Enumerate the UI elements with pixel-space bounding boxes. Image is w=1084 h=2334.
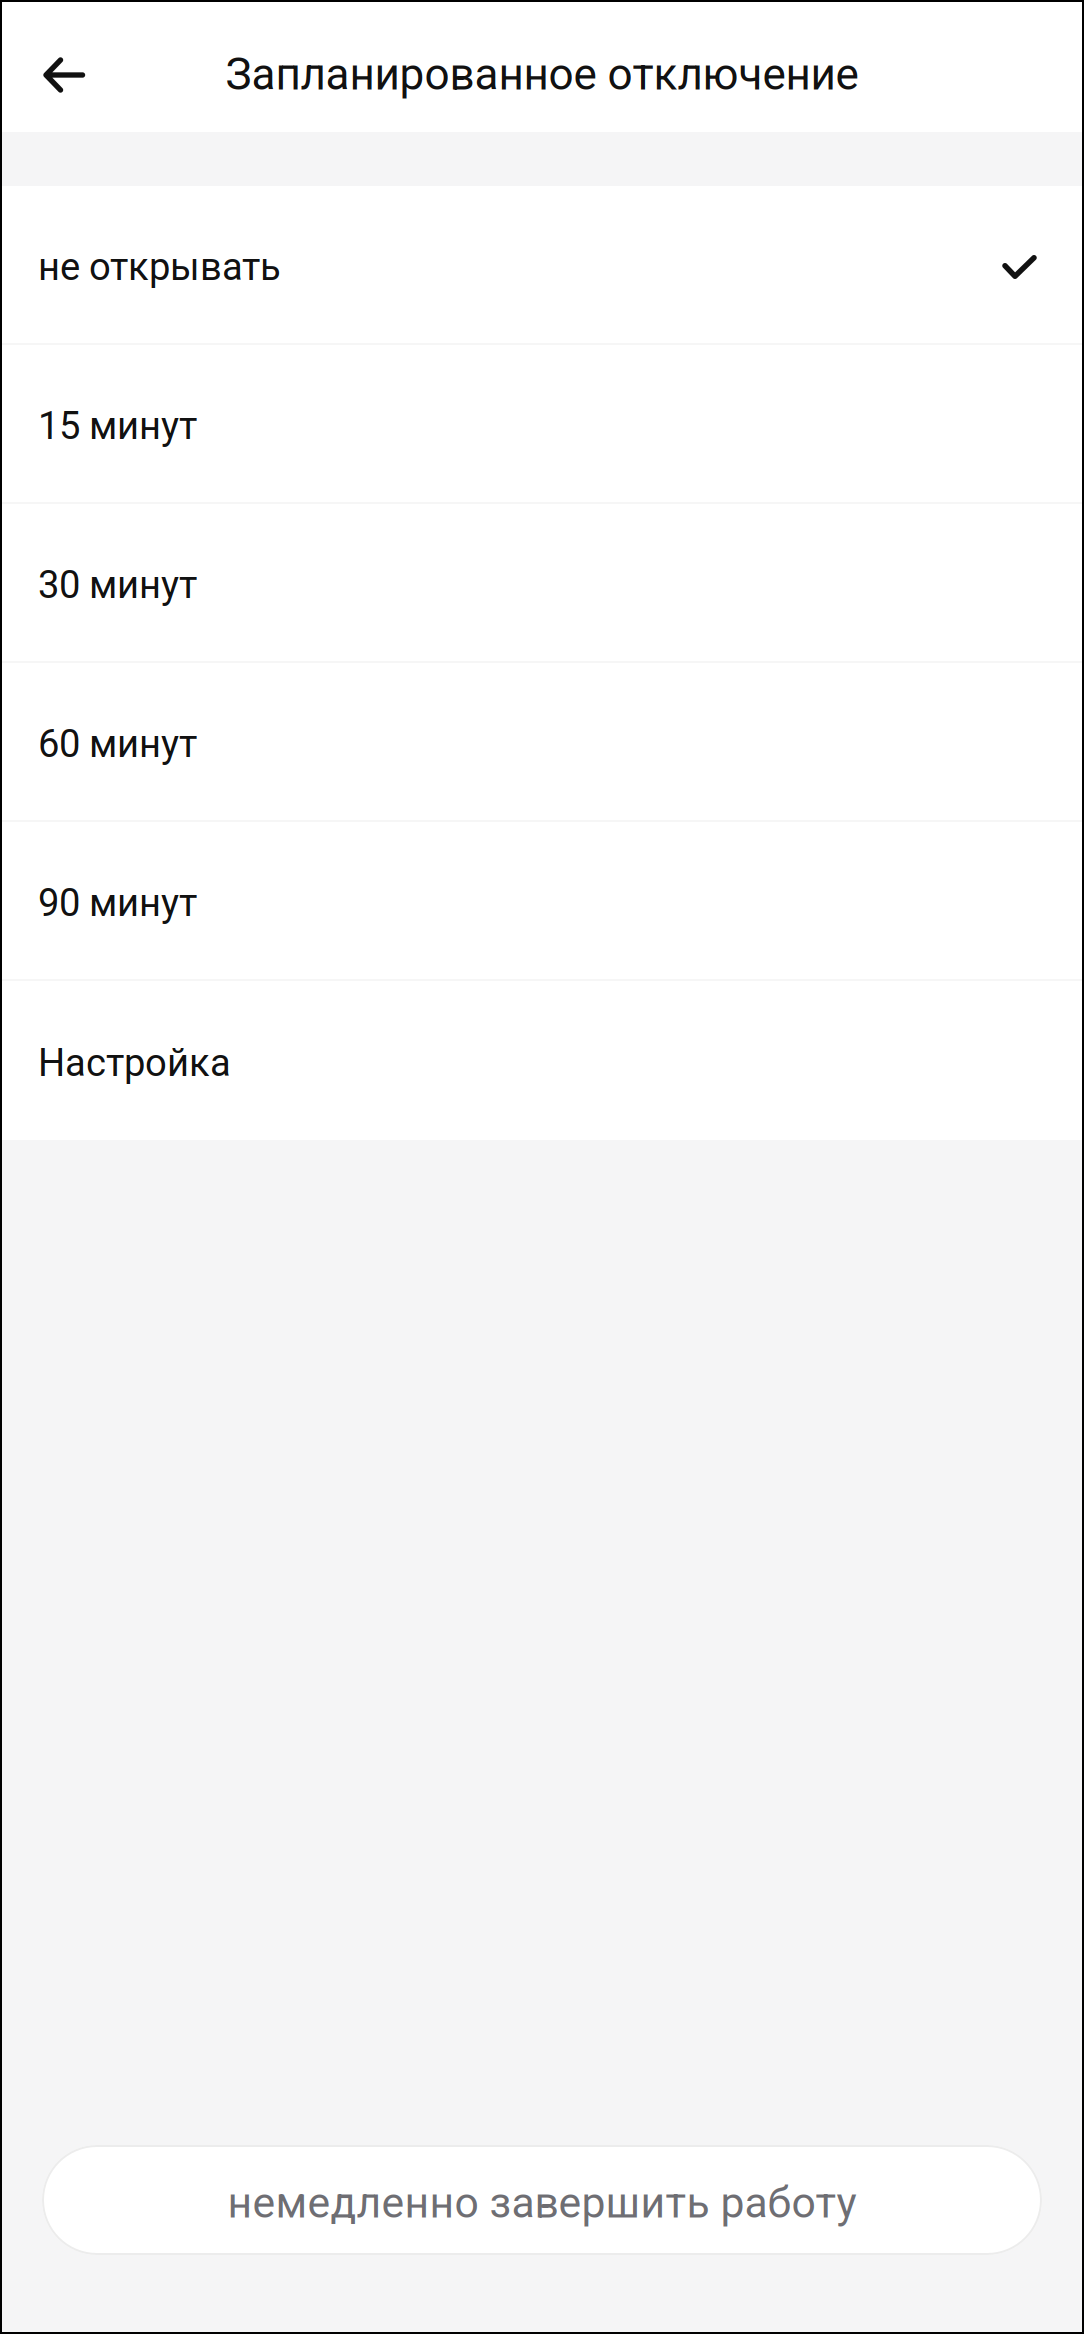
button[interactable]: 30 минут	[0, 504, 1084, 663]
button[interactable]: 60 минут	[0, 663, 1084, 822]
button[interactable]: 15 минут	[0, 345, 1084, 504]
staticText: 60 минут	[38, 722, 197, 766]
staticText: 90 минут	[38, 881, 197, 925]
button[interactable]: немедленно завершить работу	[42, 2145, 1042, 2255]
staticText: не открывать	[38, 245, 281, 289]
staticText: 30 минут	[38, 563, 197, 607]
staticText: 15 минут	[38, 404, 197, 448]
button[interactable]: Настройка	[0, 981, 1084, 1140]
button[interactable]: 90 минут	[0, 822, 1084, 981]
button[interactable]: не открывать	[0, 186, 1084, 345]
button[interactable]: Back	[0, 24, 108, 108]
staticText: Запланированное отключение	[225, 49, 858, 100]
staticText: немедленно завершить работу	[227, 2178, 856, 2228]
staticText: Настройка	[38, 1041, 231, 1085]
